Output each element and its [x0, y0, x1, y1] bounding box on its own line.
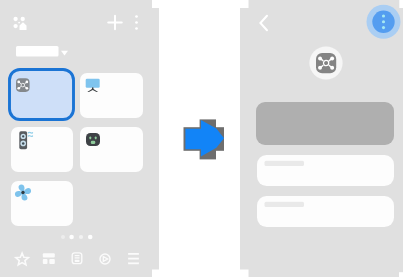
button[interactable]: Back [253, 11, 276, 35]
button[interactable]: Home [12, 14, 29, 32]
button[interactable]: Setting one [257, 155, 394, 186]
button[interactable]: Drone [8, 68, 75, 121]
button[interactable]: Smart display [80, 127, 143, 172]
button[interactable]: Add device [105, 12, 126, 33]
button[interactable]: TV [80, 73, 143, 118]
button[interactable]: Device preview [256, 102, 394, 145]
button[interactable]: Speaker [11, 127, 73, 172]
button[interactable]: Menu [122, 247, 145, 271]
button[interactable]: Feed [66, 247, 89, 271]
button[interactable]: Favorites [11, 247, 34, 271]
button[interactable]: Devices [38, 247, 61, 271]
button[interactable]: More options [127, 12, 146, 33]
button[interactable]: More options [366, 5, 400, 39]
button[interactable]: Media [94, 247, 117, 271]
button[interactable]: Select home [16, 44, 70, 58]
button[interactable]: Setting two [257, 196, 394, 227]
button[interactable]: Fan [11, 181, 73, 226]
